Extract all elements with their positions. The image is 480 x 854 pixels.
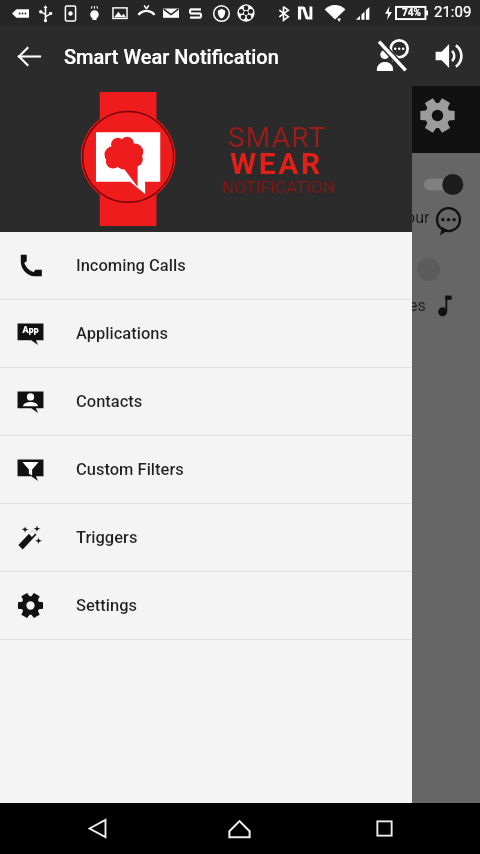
button[interactable]: Contacts <box>0 368 412 435</box>
button[interactable]: Incoming Calls <box>0 232 412 299</box>
button[interactable]: Settings <box>0 572 412 639</box>
staticText: Contacts <box>76 392 143 411</box>
staticText: 21:09 <box>434 3 472 21</box>
staticText: SMART <box>228 121 327 154</box>
button[interactable]: Back <box>0 26 58 86</box>
staticText: es <box>409 296 426 315</box>
staticText: App <box>22 325 39 336</box>
button[interactable]: Home <box>204 803 274 854</box>
staticText: Triggers <box>76 528 138 547</box>
button[interactable]: Custom Filters <box>0 436 412 503</box>
button[interactable]: Triggers <box>0 504 412 571</box>
staticText: 74% <box>402 7 421 19</box>
button[interactable]: App <box>0 300 412 367</box>
staticText: our <box>406 208 430 227</box>
staticText: WEAR <box>230 146 323 181</box>
button[interactable]: Back <box>62 803 132 854</box>
button[interactable]: Recents <box>349 803 419 854</box>
button[interactable]: Speaker notes off <box>364 26 420 86</box>
staticText: Applications <box>76 324 169 343</box>
staticText: Custom Filters <box>76 460 184 479</box>
staticText: NOTIFICATION <box>222 177 336 197</box>
staticText: Settings <box>76 596 138 615</box>
staticText: Incoming Calls <box>76 256 186 275</box>
staticText: Smart Wear Notification <box>64 45 279 68</box>
button[interactable]: Volume <box>420 26 480 86</box>
